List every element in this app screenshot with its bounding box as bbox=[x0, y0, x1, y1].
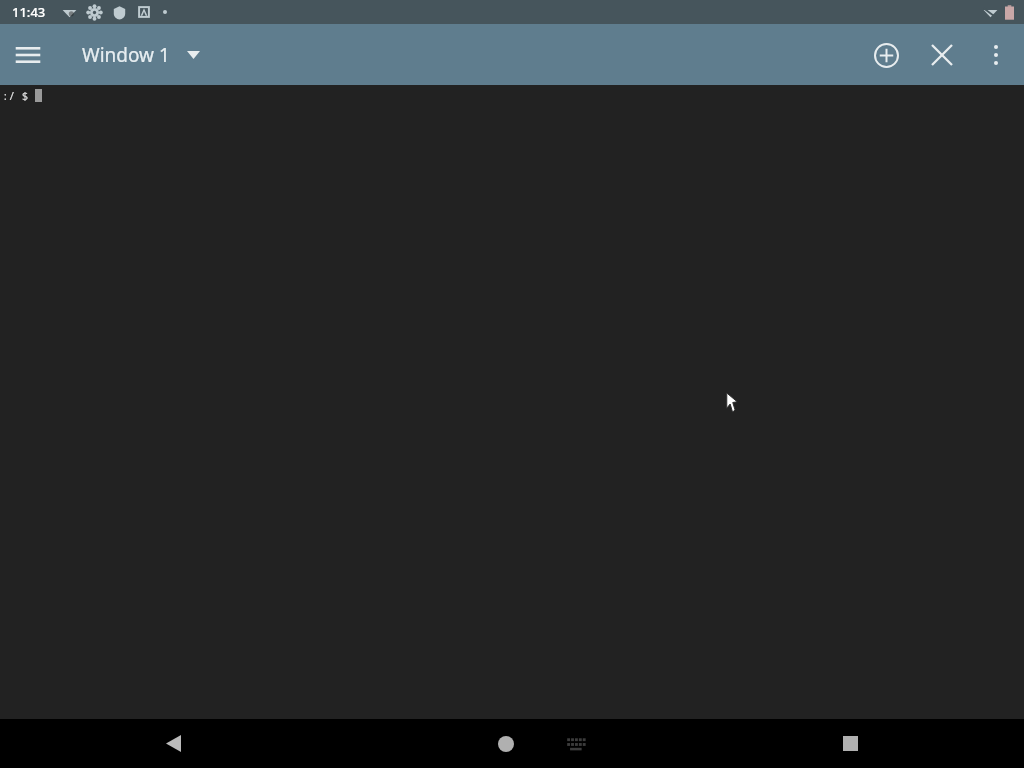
staticText: 11:43 bbox=[12, 3, 46, 21]
button[interactable]: Show keyboard bbox=[554, 719, 598, 768]
button[interactable]: Recent apps bbox=[818, 719, 882, 768]
button[interactable]: Open navigation drawer bbox=[0, 27, 56, 83]
staticText: Window 1 bbox=[82, 42, 170, 68]
button[interactable]: More options bbox=[970, 29, 1022, 81]
button[interactable]: Home bbox=[474, 719, 538, 768]
button[interactable]: Back bbox=[141, 719, 205, 768]
button[interactable]: New window bbox=[858, 27, 914, 83]
button[interactable]: Close window bbox=[914, 27, 970, 83]
button[interactable]: Window 1 bbox=[82, 42, 200, 68]
staticText: :/ $ bbox=[2, 88, 35, 103]
